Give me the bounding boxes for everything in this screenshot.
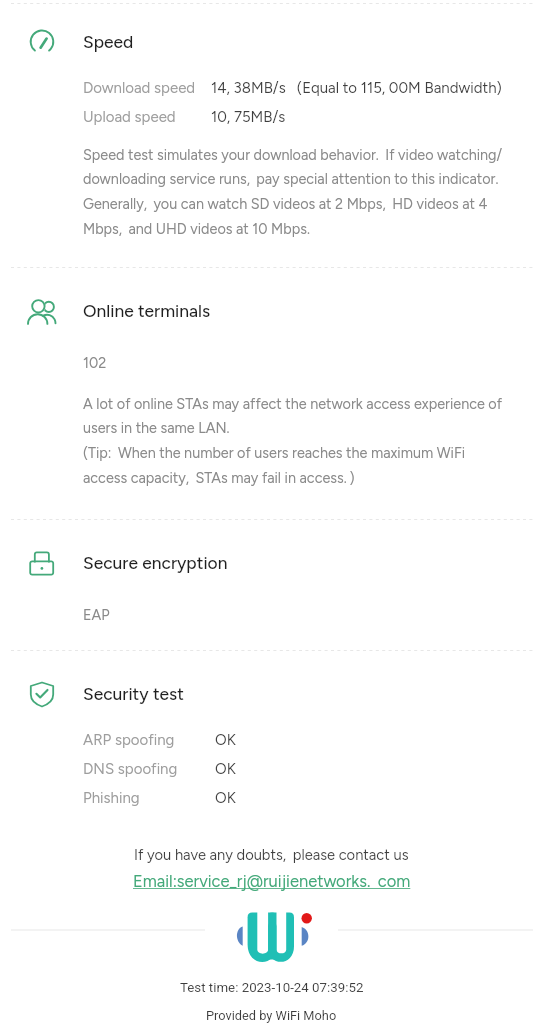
staticText: Speed xyxy=(83,31,134,52)
staticText: Provided by WiFi Moho xyxy=(206,1008,337,1023)
staticText: Download speed xyxy=(83,79,196,97)
staticText: 102 xyxy=(83,354,107,371)
button[interactable]: Security test xyxy=(27,679,57,709)
staticText: If you have any doubts, please contact u… xyxy=(134,846,409,864)
staticText: Phishing xyxy=(83,789,140,807)
staticText: DNS spoofing xyxy=(83,760,178,778)
staticText: Email:service_rj@ruijienetworks. com xyxy=(133,871,411,891)
button[interactable]: Online terminals xyxy=(27,296,57,326)
staticText: OK xyxy=(215,789,236,807)
button[interactable]: Email:service_rj@ruijienetworks. com xyxy=(133,871,411,891)
button[interactable]: Secure encryption xyxy=(27,548,57,578)
staticText: OK xyxy=(215,731,236,749)
staticText: Secure encryption xyxy=(83,552,228,573)
staticText: Upload speed xyxy=(83,108,176,126)
staticText: ARP spoofing xyxy=(83,731,175,749)
button[interactable]: Speed xyxy=(27,27,57,57)
staticText: EAP xyxy=(83,606,110,623)
staticText: OK xyxy=(215,760,236,778)
staticText: 14, 38MB/s (Equal to 115, 00M Bandwidth) xyxy=(211,79,502,97)
staticText: Security test xyxy=(83,683,184,704)
staticText: Speed test simulates your download behav… xyxy=(83,146,520,238)
staticText: Online terminals xyxy=(83,300,211,321)
staticText: Test time: 2023-10-24 07:39:52 xyxy=(180,980,364,996)
staticText: 10, 75MB/s xyxy=(211,108,286,126)
staticText: A lot of online STAs may affect the netw… xyxy=(83,395,503,487)
